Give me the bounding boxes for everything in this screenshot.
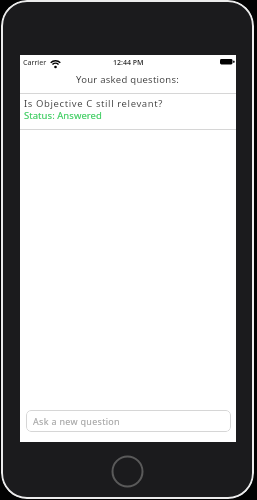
- staticText: Carrier: [23, 58, 47, 68]
- button[interactable]: Is Objective C still relevant?: [20, 94, 236, 129]
- staticText: Status: Answered: [24, 109, 102, 122]
- staticText: 12:44 PM: [113, 58, 144, 68]
- staticText: Your asked questions:: [76, 73, 180, 86]
- button[interactable]: [111, 455, 144, 488]
- staticText: Is Objective C still relevant?: [24, 97, 163, 110]
- button[interactable]: Ask a new question: [26, 410, 231, 432]
- staticText: Ask a new question: [33, 415, 120, 427]
